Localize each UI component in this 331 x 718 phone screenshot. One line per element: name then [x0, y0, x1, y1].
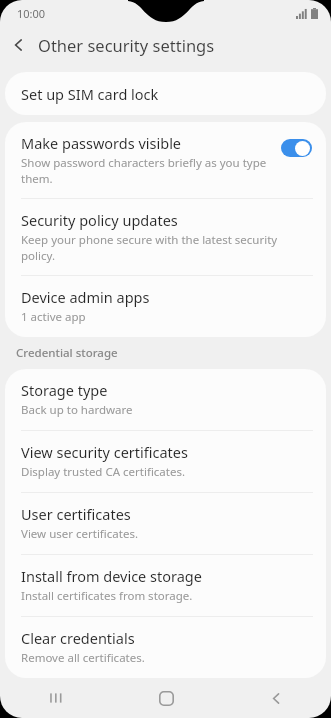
staticText: Install certificates from storage. [21, 588, 193, 604]
button[interactable]: Install from device storage [5, 555, 326, 616]
staticText: User certificates [21, 504, 131, 524]
staticText: Other security settings [38, 34, 215, 56]
button[interactable]: Recent apps [0, 678, 111, 718]
staticText: Credential storage [16, 345, 118, 361]
staticText: Security policy updates [21, 210, 178, 230]
staticText: Clear credentials [21, 628, 135, 648]
button[interactable]: Storage type [5, 369, 326, 430]
button[interactable]: Clear credentials [5, 617, 326, 678]
staticText: Make passwords visible [21, 133, 182, 153]
button[interactable]: View security certificates [5, 431, 326, 492]
button[interactable]: Make passwords visible [5, 122, 326, 198]
staticText: Set up SIM card lock [21, 84, 159, 104]
staticText: Device admin apps [21, 287, 150, 307]
staticText: Storage type [21, 380, 108, 400]
staticText: 1 active app [21, 309, 86, 325]
staticText: Back up to hardware [21, 402, 133, 418]
button[interactable]: User certificates [5, 493, 326, 554]
button[interactable]: Set up SIM card lock [5, 72, 326, 115]
staticText: Keep your phone secure with the latest s… [21, 232, 310, 263]
staticText: Install from device storage [21, 566, 202, 586]
staticText: View user certificates. [21, 526, 138, 542]
button[interactable]: Back [0, 26, 38, 64]
staticText: 10:00 [17, 6, 46, 21]
button[interactable]: Back [221, 678, 331, 718]
button[interactable]: Device admin apps [5, 276, 326, 337]
button[interactable]: Home [111, 678, 221, 718]
staticText: Display trusted CA certificates. [21, 464, 186, 480]
button[interactable]: Security policy updates [5, 199, 326, 275]
staticText: Remove all certificates. [21, 650, 145, 666]
staticText: View security certificates [21, 442, 188, 462]
staticText: Show password characters briefly as you … [21, 155, 271, 186]
